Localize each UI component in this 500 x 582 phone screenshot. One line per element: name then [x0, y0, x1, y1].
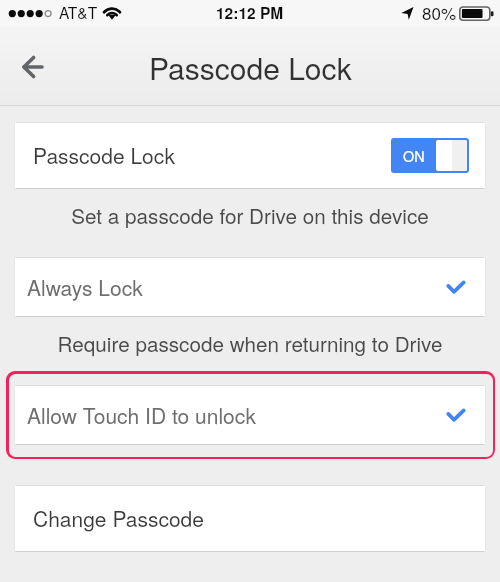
button[interactable]: ON: [391, 138, 469, 173]
staticText: Passcode Lock: [149, 46, 352, 89]
staticText: 12:12 PM: [216, 2, 284, 24]
staticText: Always Lock: [27, 272, 143, 302]
staticText: ON: [403, 145, 425, 166]
button[interactable]: Passcode Lock: [14, 122, 486, 189]
staticText: 80%: [422, 0, 457, 24]
staticText: Passcode Lock: [33, 140, 175, 170]
button[interactable]: Back: [4, 38, 62, 96]
staticText: Set a passcode for Drive on this device: [0, 200, 500, 230]
staticText: Change Passcode: [33, 503, 204, 533]
staticText: AT&T: [59, 1, 98, 23]
button[interactable]: Allow Touch ID to unlock: [14, 385, 486, 445]
button[interactable]: Change Passcode: [14, 485, 486, 552]
staticText: Allow Touch ID to unlock: [27, 400, 256, 430]
button[interactable]: Always Lock: [14, 257, 486, 317]
staticText: Require passcode when returning to Drive: [0, 328, 500, 358]
